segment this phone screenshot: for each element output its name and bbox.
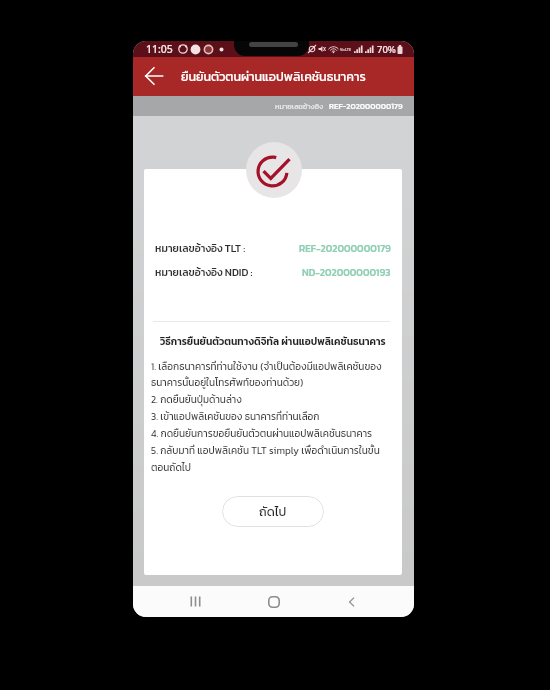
staticText: หมายเลขอ้างอิง TLT : <box>155 240 246 256</box>
staticText: 1. เลือกธนาคารที่ท่านใช้งาน (จำเป็นต้องม… <box>151 359 395 475</box>
staticText: ยืนยันตัวตนผ่านแอปพลิเคชันธนาคาร <box>181 67 366 86</box>
staticText: หมายเลขอ้างอิง NDID : <box>155 264 253 280</box>
staticText: วิธีการยืนยันตัวตนทางดิจิทัล ผ่านแอปพลิเ… <box>160 334 386 349</box>
staticText: ND-202000000193 <box>302 265 391 280</box>
staticText: REF-202000000179 <box>329 100 403 112</box>
staticText: VoLTE <box>340 47 352 52</box>
staticText: 11:05 <box>146 42 173 56</box>
button[interactable]: Recent apps <box>178 586 212 617</box>
staticText: 70% <box>377 43 396 56</box>
staticText: REF-202000000179 <box>299 241 391 256</box>
button[interactable]: ถัดไป <box>222 496 324 527</box>
button[interactable]: Home <box>257 586 291 617</box>
button[interactable]: Back <box>135 57 173 95</box>
button[interactable]: Back <box>335 586 369 617</box>
staticText: ถัดไป <box>259 502 287 521</box>
staticText: หมายเลขอ้างอิง <box>275 101 324 112</box>
